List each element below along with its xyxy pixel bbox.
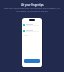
staticText: Take your whole team with you wherever w… (3, 7, 61, 12)
button[interactable] (23, 30, 41, 32)
button[interactable]: Get started (24, 59, 40, 63)
button[interactable] (23, 24, 41, 26)
staticText: At your fingertips (21, 3, 44, 7)
